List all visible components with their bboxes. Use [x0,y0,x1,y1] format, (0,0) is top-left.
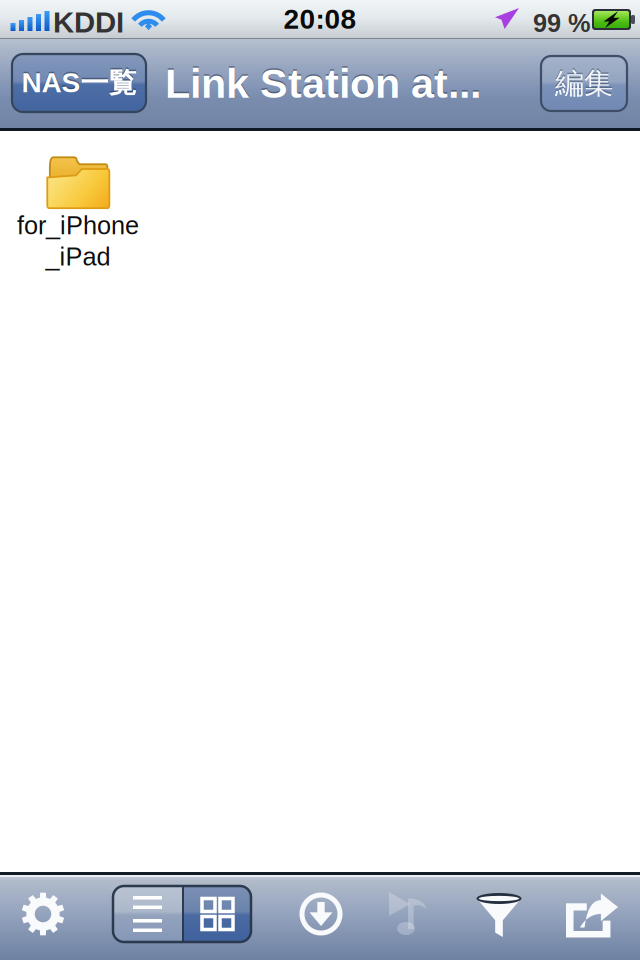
staticText: Link Station at... [165,60,481,107]
button[interactable]: Download [284,873,358,955]
button[interactable]: List view [113,886,182,942]
staticText: for_iPhone [17,211,139,239]
button[interactable]: Filter [462,874,536,956]
staticText: NAS一覧 [21,64,136,99]
staticText: NAS一覧 [21,65,136,101]
staticText: 編集 [555,65,613,102]
staticText: KDDI [53,6,124,39]
staticText: 20:08 [283,3,356,35]
staticText: Link Station at... [165,59,481,105]
button[interactable]: Settings [6,873,80,955]
button[interactable]: 編集 [541,56,627,111]
staticText: 99 % [533,9,591,37]
button[interactable]: Share [555,874,629,956]
button[interactable]: Grid view [184,886,251,942]
staticText: _iPad [45,242,110,271]
button[interactable]: NAS一覧 [12,54,146,112]
button[interactable]: for_iPhone [0,149,156,277]
button[interactable]: Music player [373,873,447,955]
staticText: 編集 [555,63,613,100]
